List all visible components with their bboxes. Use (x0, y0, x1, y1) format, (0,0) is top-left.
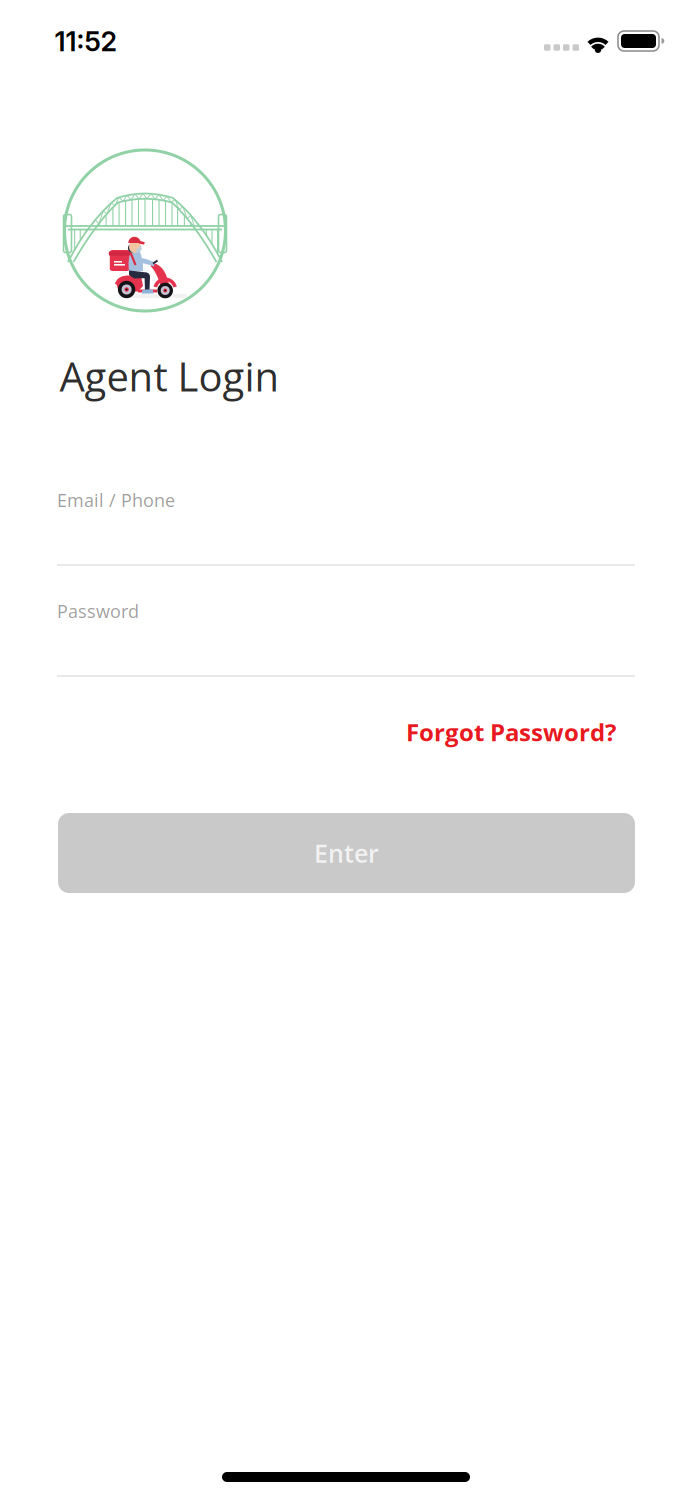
staticText: Agent Login (59, 349, 279, 403)
button[interactable]: Email / Phone (57, 478, 635, 566)
staticText: Forgot Password? (406, 716, 616, 748)
button[interactable]: Password (57, 589, 635, 677)
button[interactable]: Enter (58, 813, 635, 893)
button[interactable]: Forgot Password? (406, 716, 616, 748)
staticText: Password (57, 599, 139, 623)
staticText: Enter (314, 836, 379, 870)
staticText: 11:52 (54, 25, 116, 58)
staticText: Email / Phone (57, 488, 175, 512)
